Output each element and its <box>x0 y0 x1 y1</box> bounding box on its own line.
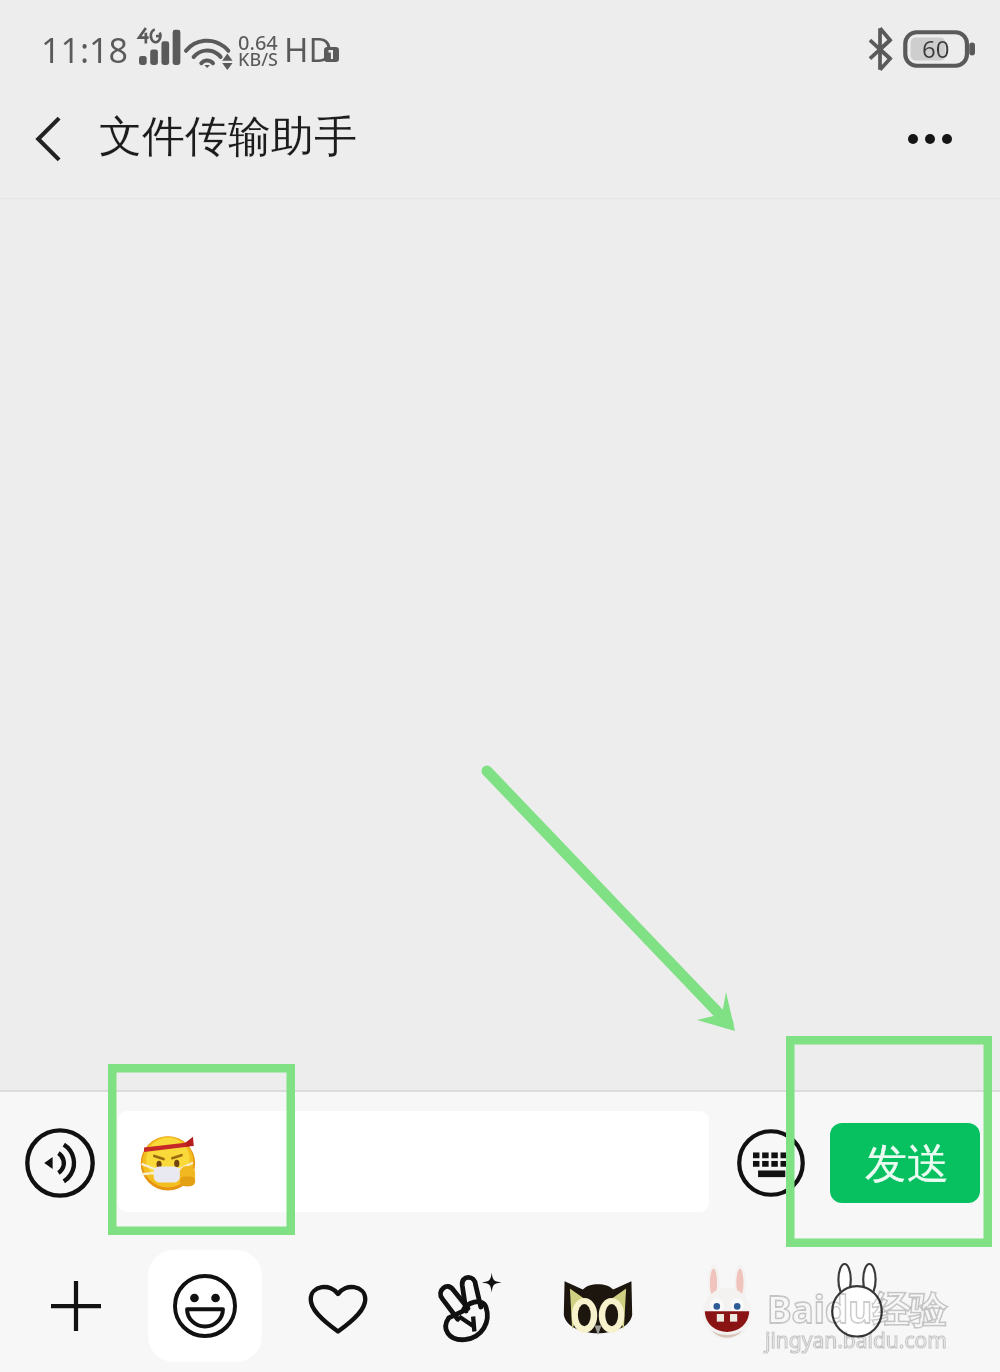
button[interactable]: Add <box>40 1270 112 1342</box>
staticText: Baidu经验 <box>767 1283 947 1334</box>
staticText: 0.64 <box>238 29 278 56</box>
staticText: KB/S <box>238 47 278 72</box>
button[interactable]: Favorite stickers <box>302 1272 374 1344</box>
button[interactable]: 发送 <box>830 1123 980 1203</box>
staticText: 文件传输助手 <box>99 110 357 164</box>
button[interactable]: Emoji <box>148 1250 262 1362</box>
button[interactable]: Voice input <box>25 1128 95 1198</box>
staticText: HD <box>284 27 333 72</box>
staticText: jingyan.baidu.com <box>765 1326 947 1355</box>
button[interactable]: Message input field <box>118 1111 709 1212</box>
button[interactable]: Sticker pack 1 <box>430 1269 506 1345</box>
button[interactable]: Sticker pack 3 <box>688 1264 766 1342</box>
staticText: 60 <box>922 32 950 65</box>
staticText: 11:18 <box>41 27 128 73</box>
button[interactable]: Sticker pack 4 <box>818 1262 896 1340</box>
button[interactable]: Back <box>8 103 80 175</box>
button[interactable]: Sticker pack 2 <box>556 1268 640 1352</box>
button[interactable]: Keyboard <box>737 1129 805 1197</box>
staticText: 发送 <box>865 1138 949 1191</box>
button[interactable]: More options <box>894 103 966 175</box>
